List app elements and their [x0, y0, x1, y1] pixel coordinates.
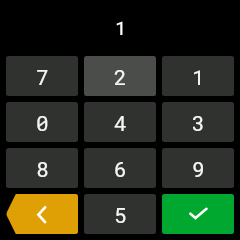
button[interactable]: 2: [84, 56, 156, 96]
staticText: 7: [36, 63, 49, 91]
button[interactable]: Delete last digit: [6, 194, 78, 234]
staticText: 0: [36, 109, 49, 137]
staticText: 6: [114, 155, 127, 183]
button[interactable]: 1: [162, 56, 234, 96]
staticText: 1: [115, 15, 127, 40]
staticText: 8: [36, 155, 49, 183]
button[interactable]: 5: [84, 194, 156, 234]
staticText: 1: [192, 63, 205, 91]
button[interactable]: 9: [162, 148, 234, 188]
staticText: 9: [192, 155, 205, 183]
button[interactable]: 7: [6, 56, 78, 96]
button[interactable]: 6: [84, 148, 156, 188]
button[interactable]: 4: [84, 102, 156, 142]
button[interactable]: 8: [6, 148, 78, 188]
staticText: 3: [192, 109, 205, 137]
staticText: 5: [114, 201, 127, 229]
button[interactable]: 0: [6, 102, 78, 142]
button[interactable]: Confirm PIN: [162, 194, 234, 234]
staticText: 2: [114, 63, 127, 91]
button[interactable]: 3: [162, 102, 234, 142]
staticText: 4: [114, 109, 127, 137]
